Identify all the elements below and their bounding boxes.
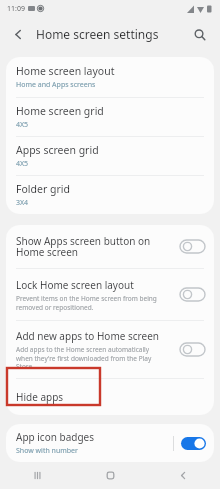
staticText: Home screen layout	[16, 64, 115, 78]
button[interactable]: Lock Home screen layout	[6, 269, 214, 320]
staticText: Home screen grid	[16, 104, 104, 118]
button[interactable]: Hide apps	[6, 379, 214, 415]
staticText: App icon badges	[16, 430, 94, 444]
staticText: Folder grid	[16, 182, 70, 196]
button[interactable]: Back	[147, 462, 220, 489]
staticText: 11:09	[7, 4, 25, 14]
button[interactable]: Folder grid	[6, 176, 214, 214]
staticText: Show with number	[16, 446, 78, 456]
button[interactable]: Apps screen grid	[6, 137, 214, 175]
button[interactable]: Search	[189, 24, 210, 45]
staticText: Prevent items on the Home screen from be…	[16, 294, 157, 312]
staticText: Add apps to the Home screen automaticall…	[16, 345, 152, 371]
staticText: Apps screen grid	[16, 143, 99, 157]
staticText: 4X5	[16, 120, 29, 130]
staticText: 4X5	[16, 159, 29, 169]
button[interactable]: Home	[74, 462, 147, 489]
staticText: Lock Home screen layout	[16, 278, 134, 292]
staticText: Add new apps to Home screen	[16, 329, 159, 343]
button[interactable]: App icon badges	[6, 424, 214, 462]
button[interactable]: Home screen grid	[6, 98, 214, 136]
staticText: Show Apps screen button on Home screen	[16, 234, 151, 259]
button[interactable]: Recents	[0, 462, 74, 489]
button[interactable]: Back	[8, 24, 29, 45]
staticText: Home screen settings	[36, 26, 159, 42]
button[interactable]: Show Apps screen button on Home screen	[6, 225, 214, 268]
button[interactable]: Add new apps to Home screen	[6, 321, 214, 378]
staticText: Hide apps	[16, 390, 64, 404]
button[interactable]: Home screen layout	[6, 57, 214, 97]
staticText: Home and Apps screens	[16, 80, 96, 90]
staticText: 3X4	[16, 198, 29, 208]
